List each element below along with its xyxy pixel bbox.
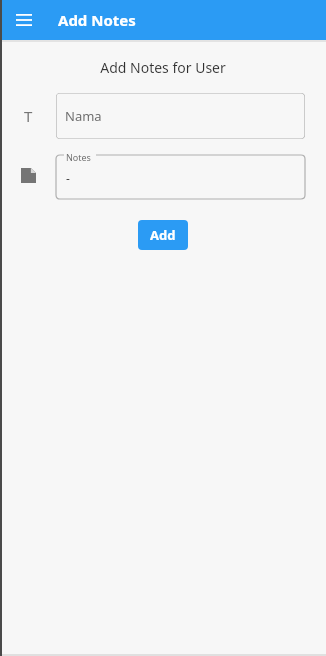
staticText: - xyxy=(66,170,70,186)
button[interactable]: Add xyxy=(138,220,188,250)
staticText: Notes xyxy=(66,151,91,163)
staticText: T xyxy=(24,106,33,126)
staticText: Add Notes xyxy=(58,10,136,30)
button[interactable]: Nama xyxy=(56,93,305,139)
button[interactable]: Notes xyxy=(56,151,305,199)
staticText: Add Notes for User xyxy=(0,58,326,77)
staticText: Nama xyxy=(65,107,102,125)
button[interactable]: Open navigation menu xyxy=(10,6,38,34)
staticText: Add xyxy=(150,226,176,244)
